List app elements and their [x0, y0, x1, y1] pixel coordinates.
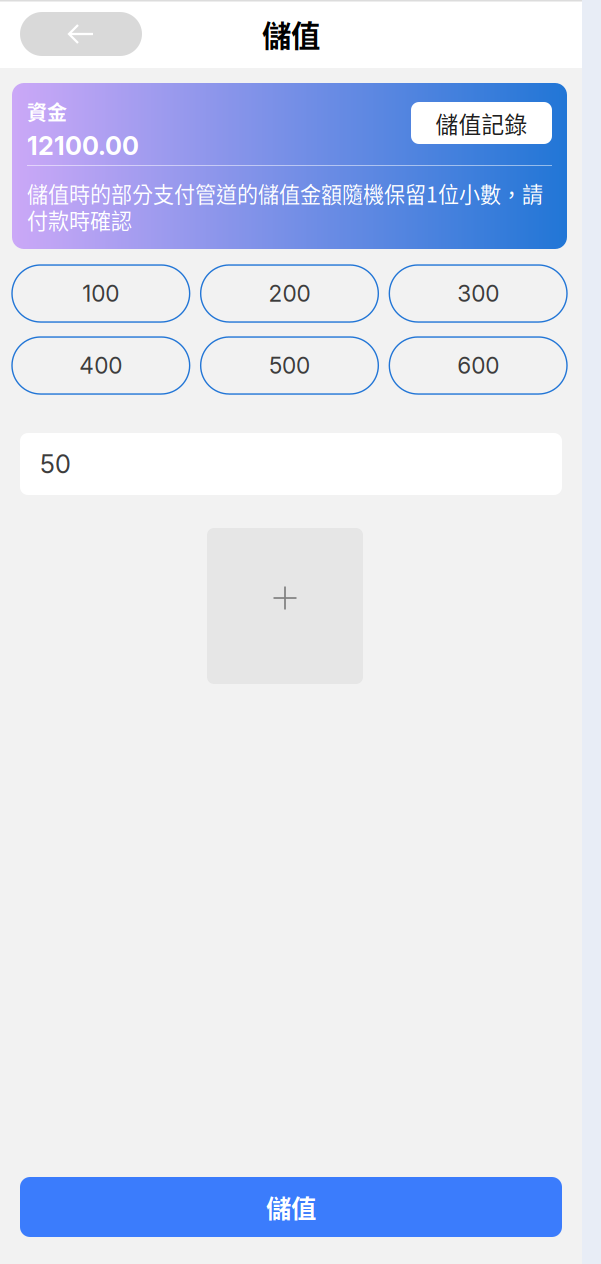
staticText: 儲值 [266, 1189, 316, 1225]
button[interactable]: 儲值記錄 [411, 102, 552, 144]
button[interactable]: 400 [12, 337, 190, 394]
staticText: 資金 [27, 97, 67, 126]
button[interactable]: Upload payment screenshot [207, 528, 363, 684]
staticText: 200 [268, 280, 310, 307]
button[interactable]: 600 [389, 337, 567, 394]
staticText: 50 [40, 449, 71, 479]
staticText: 儲值記錄 [435, 107, 527, 139]
staticText: 300 [457, 280, 499, 307]
button[interactable]: 100 [12, 265, 190, 322]
button[interactable]: 200 [201, 265, 378, 322]
staticText: 儲值 [262, 13, 320, 55]
button[interactable]: 儲值 [20, 1177, 562, 1237]
staticText: 400 [79, 352, 122, 379]
staticText: 100 [82, 280, 119, 307]
button[interactable]: 500 [201, 337, 378, 394]
button[interactable]: Back [20, 12, 142, 56]
staticText: 12100.00 [27, 130, 139, 161]
staticText: 儲值時的部分支付管道的儲值金額隨機保留1位小數，請付款時確認 [27, 178, 543, 235]
staticText: 500 [269, 352, 310, 379]
button[interactable]: 300 [389, 265, 567, 322]
staticText: 600 [457, 352, 499, 379]
